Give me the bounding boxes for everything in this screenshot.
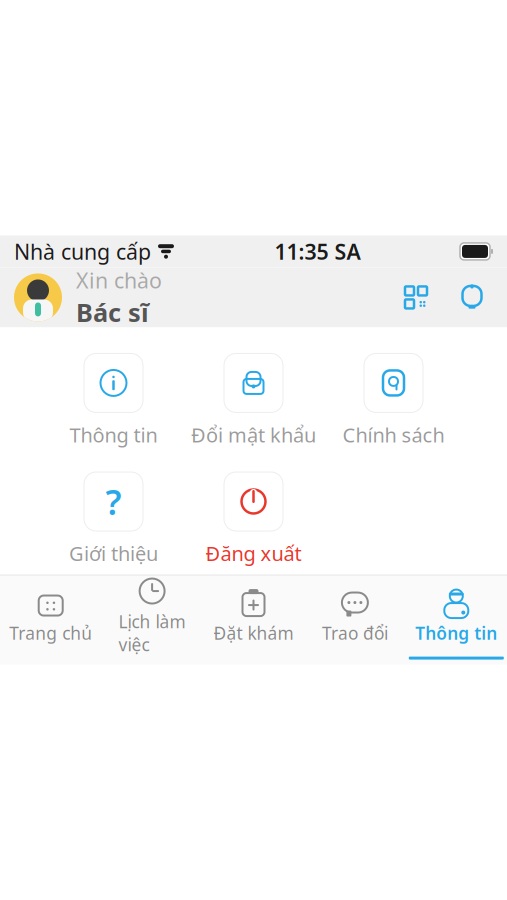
staticText: 11:35 SA bbox=[274, 237, 360, 266]
staticText: Đặt khám bbox=[213, 622, 293, 645]
staticText: Trang chủ bbox=[9, 622, 92, 645]
staticText: Đăng xuất bbox=[205, 540, 301, 567]
staticText: Chính sách bbox=[342, 421, 444, 448]
staticText: Trao đổi bbox=[322, 622, 388, 645]
button[interactable]: Thông tin bbox=[43, 353, 183, 448]
button[interactable]: Đổi mật khẩu bbox=[183, 353, 323, 448]
staticText: Giới thiệu bbox=[69, 540, 158, 567]
button[interactable]: Chính sách bbox=[323, 353, 463, 448]
staticText: Đổi mật khẩu bbox=[191, 421, 316, 448]
button[interactable]: Trao đổi bbox=[304, 588, 406, 660]
staticText: Bác sĩ bbox=[76, 295, 149, 329]
staticText: Thông tin bbox=[69, 421, 157, 448]
button[interactable]: Đặt khám bbox=[203, 588, 304, 660]
button[interactable]: Thông tin bbox=[406, 588, 507, 660]
staticText: Thông tin bbox=[415, 622, 497, 645]
staticText: Lịch làm việc bbox=[119, 610, 186, 656]
button[interactable]: Thông báo bbox=[451, 276, 493, 318]
button[interactable]: Trang chủ bbox=[0, 588, 101, 660]
button[interactable]: Lịch làm việc bbox=[101, 576, 203, 671]
button[interactable]: Quét mã QR bbox=[395, 276, 437, 318]
staticText: Nhà cung cấp bbox=[14, 237, 151, 266]
staticText: Xin chào bbox=[76, 266, 162, 294]
button[interactable]: Đăng xuất bbox=[183, 472, 323, 567]
staticText: ? bbox=[105, 478, 121, 524]
button[interactable]: ? bbox=[43, 472, 183, 567]
